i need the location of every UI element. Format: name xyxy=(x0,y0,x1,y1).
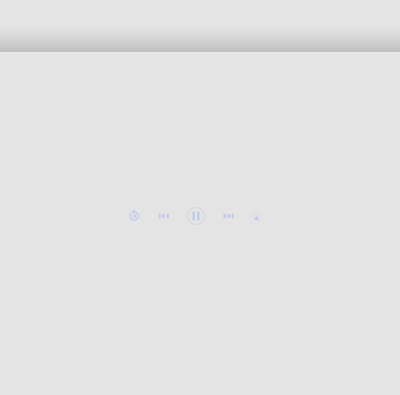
button[interactable]: Previous track xyxy=(150,200,178,232)
button[interactable]: Skip back 15 seconds xyxy=(118,200,150,232)
button[interactable]: Pause xyxy=(178,200,214,232)
button[interactable]: Next track xyxy=(214,200,243,232)
button[interactable]: AirPlay xyxy=(243,200,270,232)
